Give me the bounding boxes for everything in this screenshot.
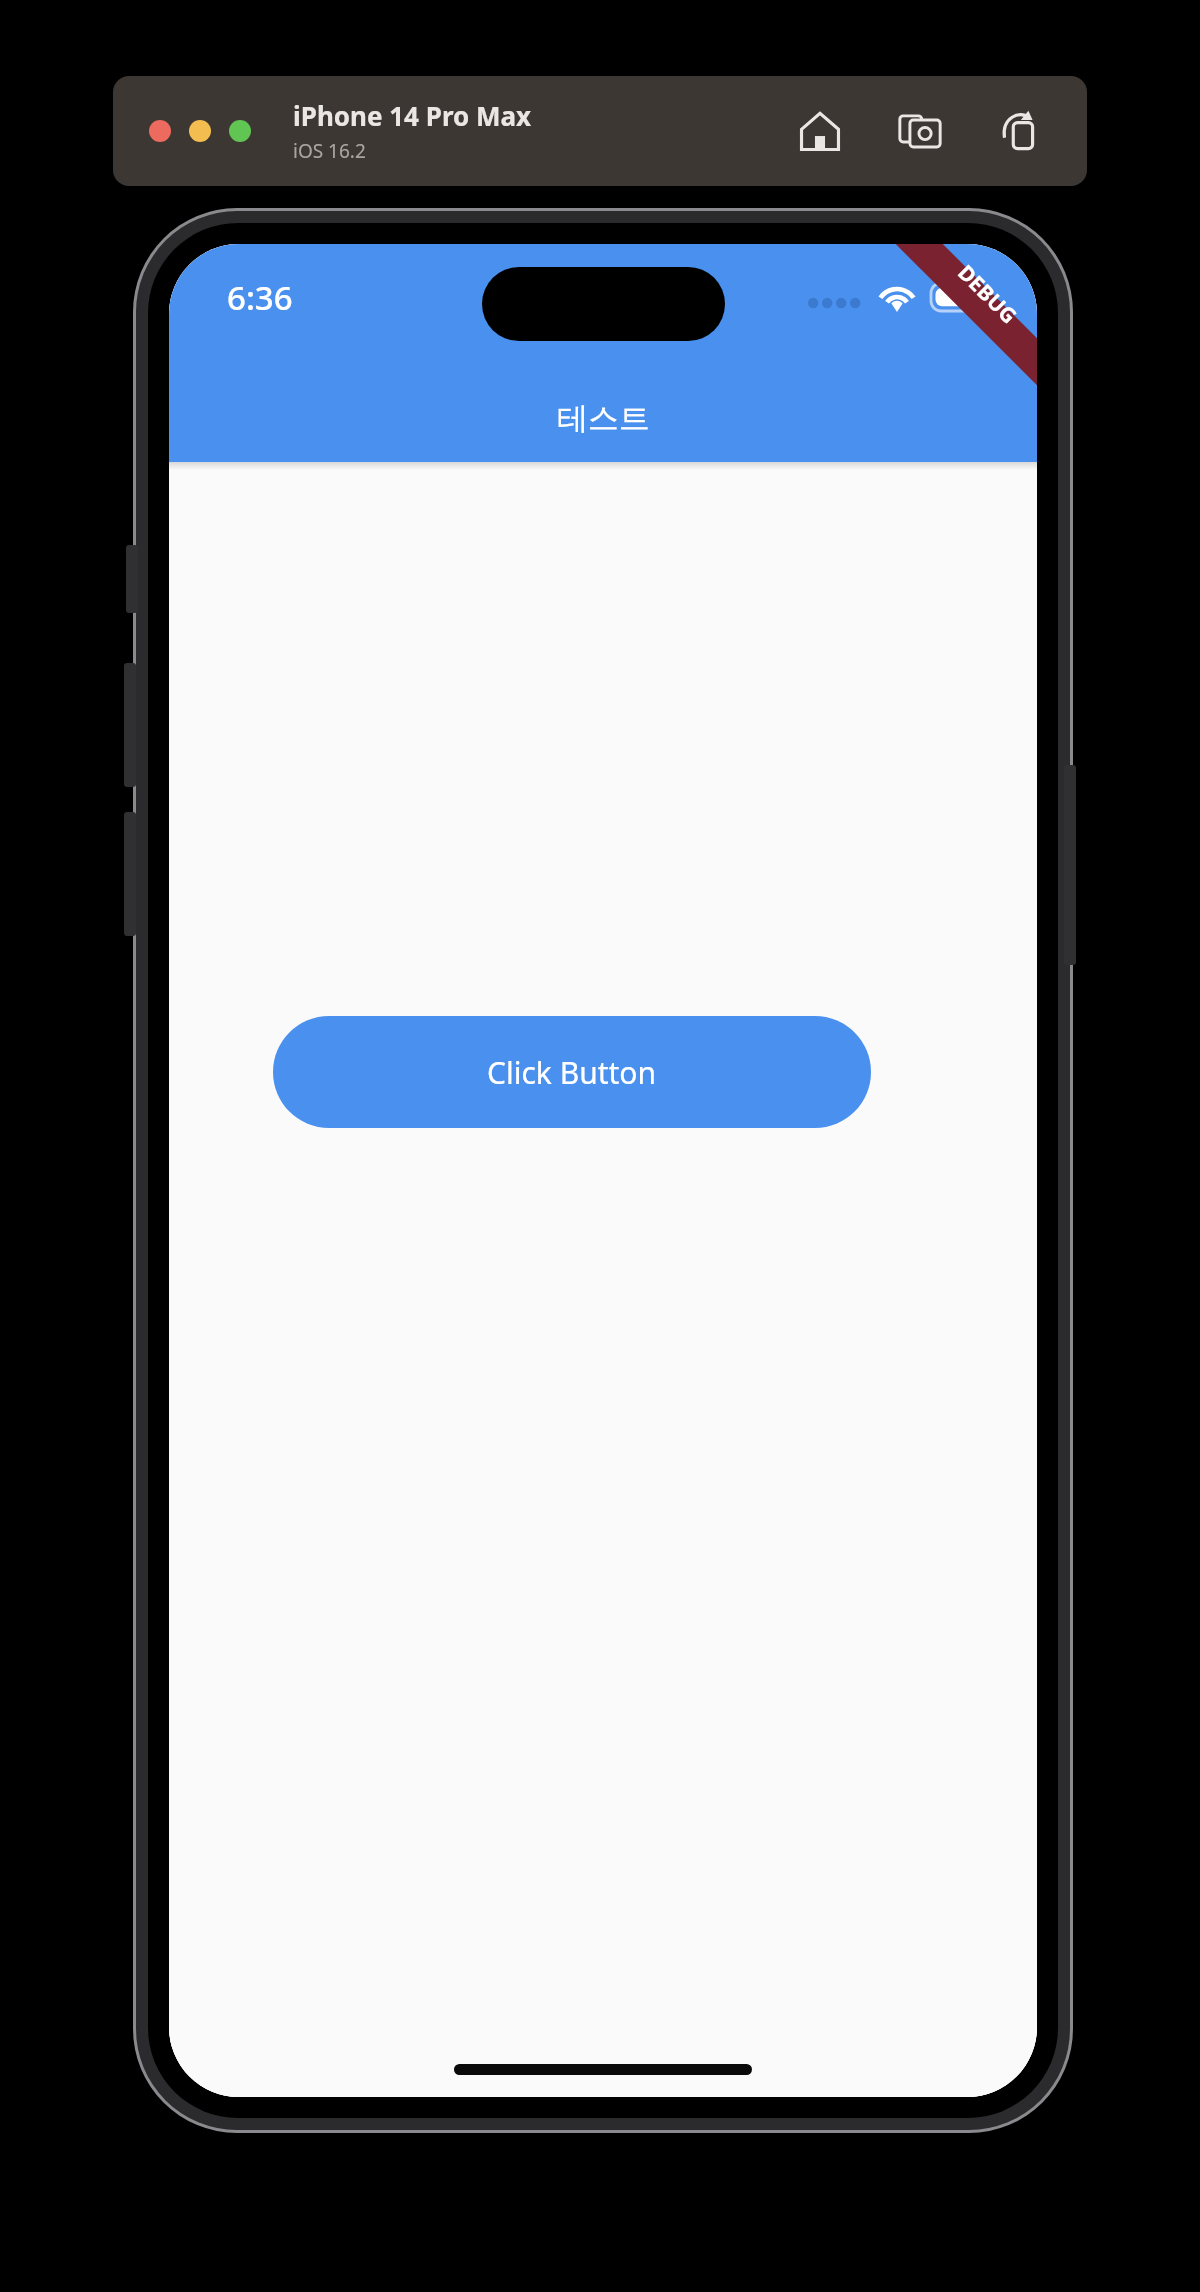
- button[interactable]: Screenshot: [893, 104, 947, 158]
- staticText: DEBUG: [951, 258, 1023, 330]
- staticText: 테스트: [557, 399, 650, 438]
- button[interactable]: Home: [793, 104, 847, 158]
- staticText: 6:36: [227, 275, 293, 320]
- button[interactable]: [149, 120, 171, 142]
- button[interactable]: Click Button: [273, 1016, 871, 1128]
- staticText: iOS 16.2: [293, 138, 366, 164]
- button[interactable]: Rotate: [993, 104, 1047, 158]
- staticText: Click Button: [487, 1052, 657, 1093]
- button[interactable]: [189, 120, 211, 142]
- staticText: iPhone 14 Pro Max: [293, 98, 532, 133]
- button[interactable]: [229, 120, 251, 142]
